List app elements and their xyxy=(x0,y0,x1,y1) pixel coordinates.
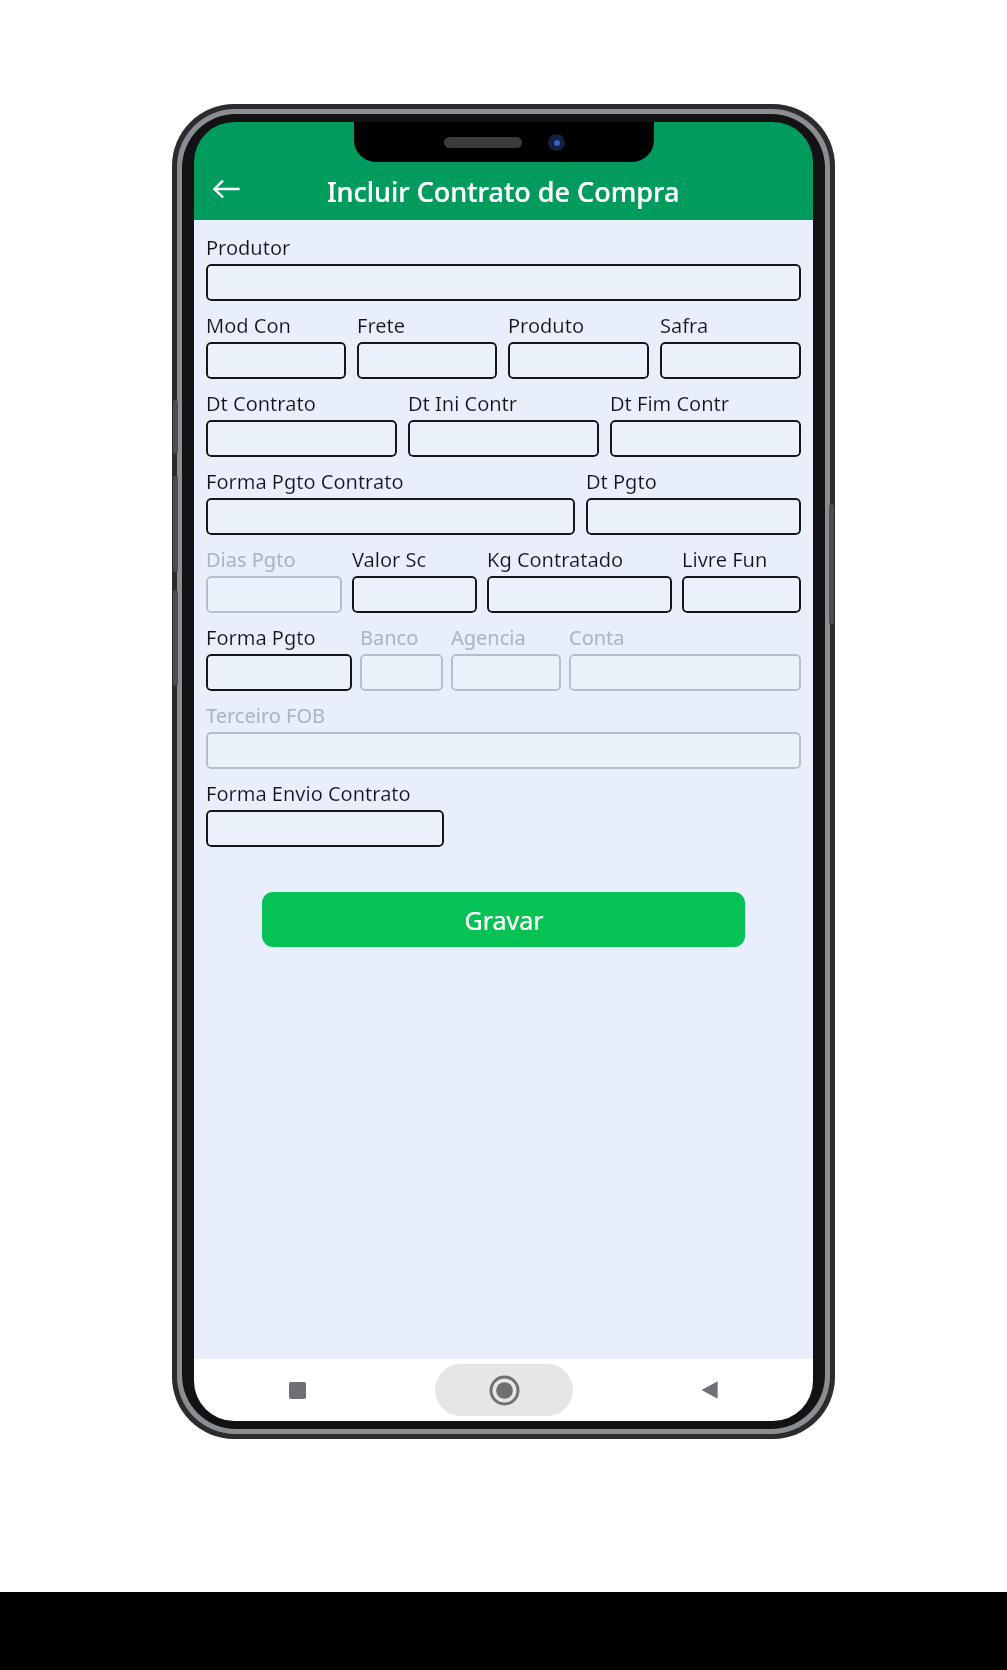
staticText: Agencia xyxy=(451,624,526,651)
button[interactable] xyxy=(487,576,672,613)
staticText: Produtor xyxy=(206,234,291,261)
staticText: Banco xyxy=(360,624,419,651)
button[interactable] xyxy=(206,498,575,535)
button[interactable] xyxy=(357,342,497,379)
staticText: Mod Con xyxy=(206,312,291,339)
button[interactable]: Recent apps xyxy=(194,1359,401,1421)
button[interactable] xyxy=(206,264,801,301)
button[interactable] xyxy=(682,576,801,613)
button[interactable]: Home xyxy=(401,1359,607,1421)
staticText: Dt Contrato xyxy=(206,390,316,417)
staticText: Incluir Contrato de Compra xyxy=(327,173,680,210)
staticText: Conta xyxy=(569,624,625,651)
staticText: Dt Pgto xyxy=(586,468,657,495)
button[interactable] xyxy=(206,810,444,847)
staticText: Frete xyxy=(357,312,406,339)
button[interactable] xyxy=(206,342,346,379)
staticText: Forma Envio Contrato xyxy=(206,780,411,807)
button[interactable] xyxy=(610,420,801,457)
button[interactable] xyxy=(586,498,801,535)
button[interactable] xyxy=(408,420,599,457)
staticText: Safra xyxy=(660,312,709,339)
staticText: Dt Fim Contr xyxy=(610,390,730,417)
button[interactable]: Gravar xyxy=(262,892,745,947)
staticText: Produto xyxy=(508,312,585,339)
staticText: Kg Contratado xyxy=(487,546,624,573)
staticText: Forma Pgto xyxy=(206,624,316,651)
button[interactable] xyxy=(569,654,801,691)
button[interactable] xyxy=(660,342,801,379)
staticText: Forma Pgto Contrato xyxy=(206,468,404,495)
button[interactable] xyxy=(508,342,649,379)
staticText: Dt Ini Contr xyxy=(408,390,518,417)
button[interactable] xyxy=(206,420,397,457)
staticText: Gravar xyxy=(464,903,544,937)
button[interactable]: Back xyxy=(607,1359,813,1421)
staticText: Dias Pgto xyxy=(206,546,296,573)
button[interactable] xyxy=(206,732,801,769)
staticText: Terceiro FOB xyxy=(206,702,326,729)
button[interactable] xyxy=(360,654,443,691)
button[interactable] xyxy=(352,576,477,613)
button[interactable] xyxy=(206,576,342,613)
staticText: Valor Sc xyxy=(352,546,427,573)
button[interactable] xyxy=(206,654,352,691)
button[interactable] xyxy=(451,654,561,691)
button[interactable]: Back xyxy=(200,162,254,216)
staticText: Livre Fun xyxy=(682,546,768,573)
